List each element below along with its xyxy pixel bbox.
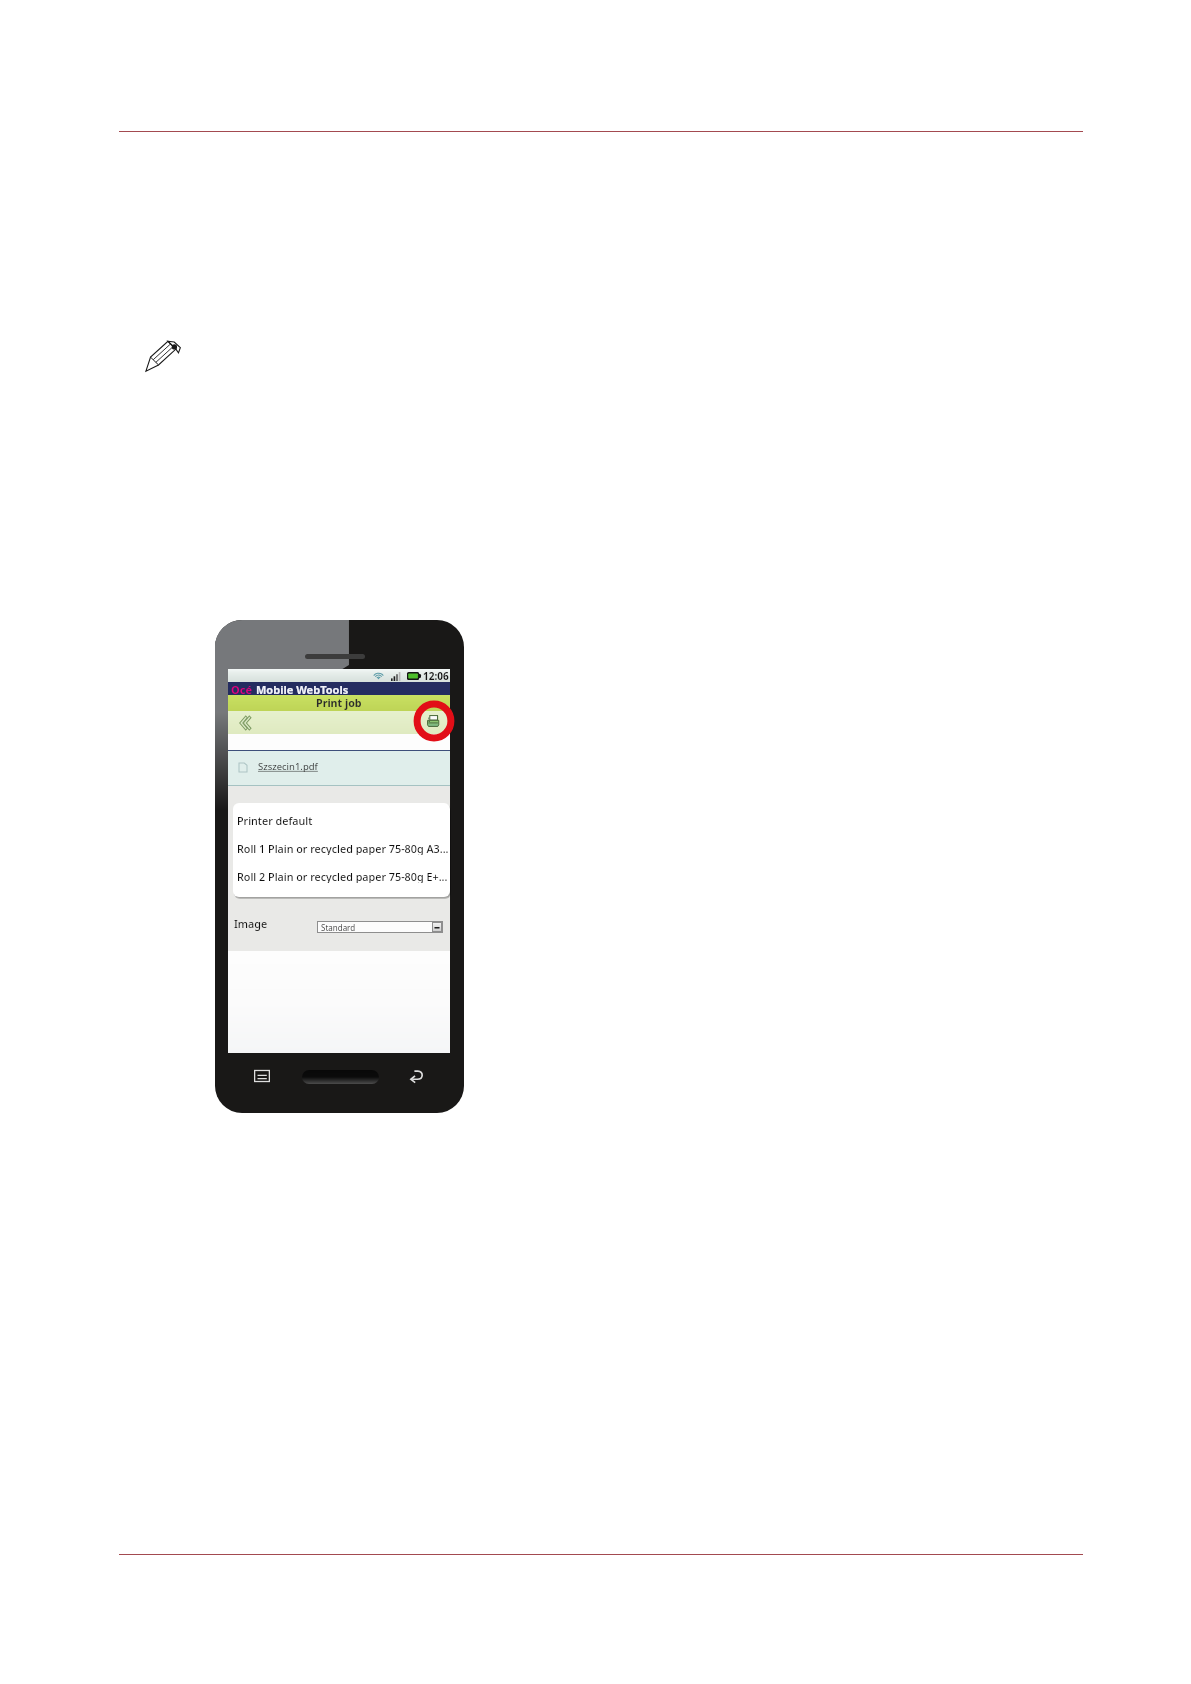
staticText: Mobile WebTools: [256, 682, 349, 695]
staticText: Océ: [231, 682, 252, 695]
button[interactable]: Roll 1 Plain or recycled paper 75-80g A3…: [233, 841, 450, 855]
staticText: Standard: [321, 922, 356, 932]
button[interactable]: Home: [302, 1070, 379, 1084]
button[interactable]: Standard: [318, 922, 442, 932]
button[interactable]: Szszecin1.pdf: [228, 751, 450, 785]
button[interactable]: Back: [239, 716, 251, 730]
staticText: 12:06: [423, 669, 449, 682]
button[interactable]: Print: [425, 713, 441, 729]
button[interactable]: Roll 2 Plain or recycled paper 75-80g E+…: [233, 869, 450, 883]
staticText: Roll 2 Plain or recycled paper 75-80g E+…: [237, 869, 448, 883]
button[interactable]: Printer default: [233, 813, 450, 827]
staticText: Printer default: [237, 813, 313, 827]
staticText: Szszecin1.pdf: [258, 760, 318, 773]
button[interactable]: Back: [408, 1070, 424, 1084]
staticText: Print job: [316, 696, 362, 711]
button[interactable]: Menu: [254, 1070, 270, 1082]
staticText: Roll 1 Plain or recycled paper 75-80g A3…: [237, 841, 449, 855]
staticText: Image: [234, 916, 268, 931]
